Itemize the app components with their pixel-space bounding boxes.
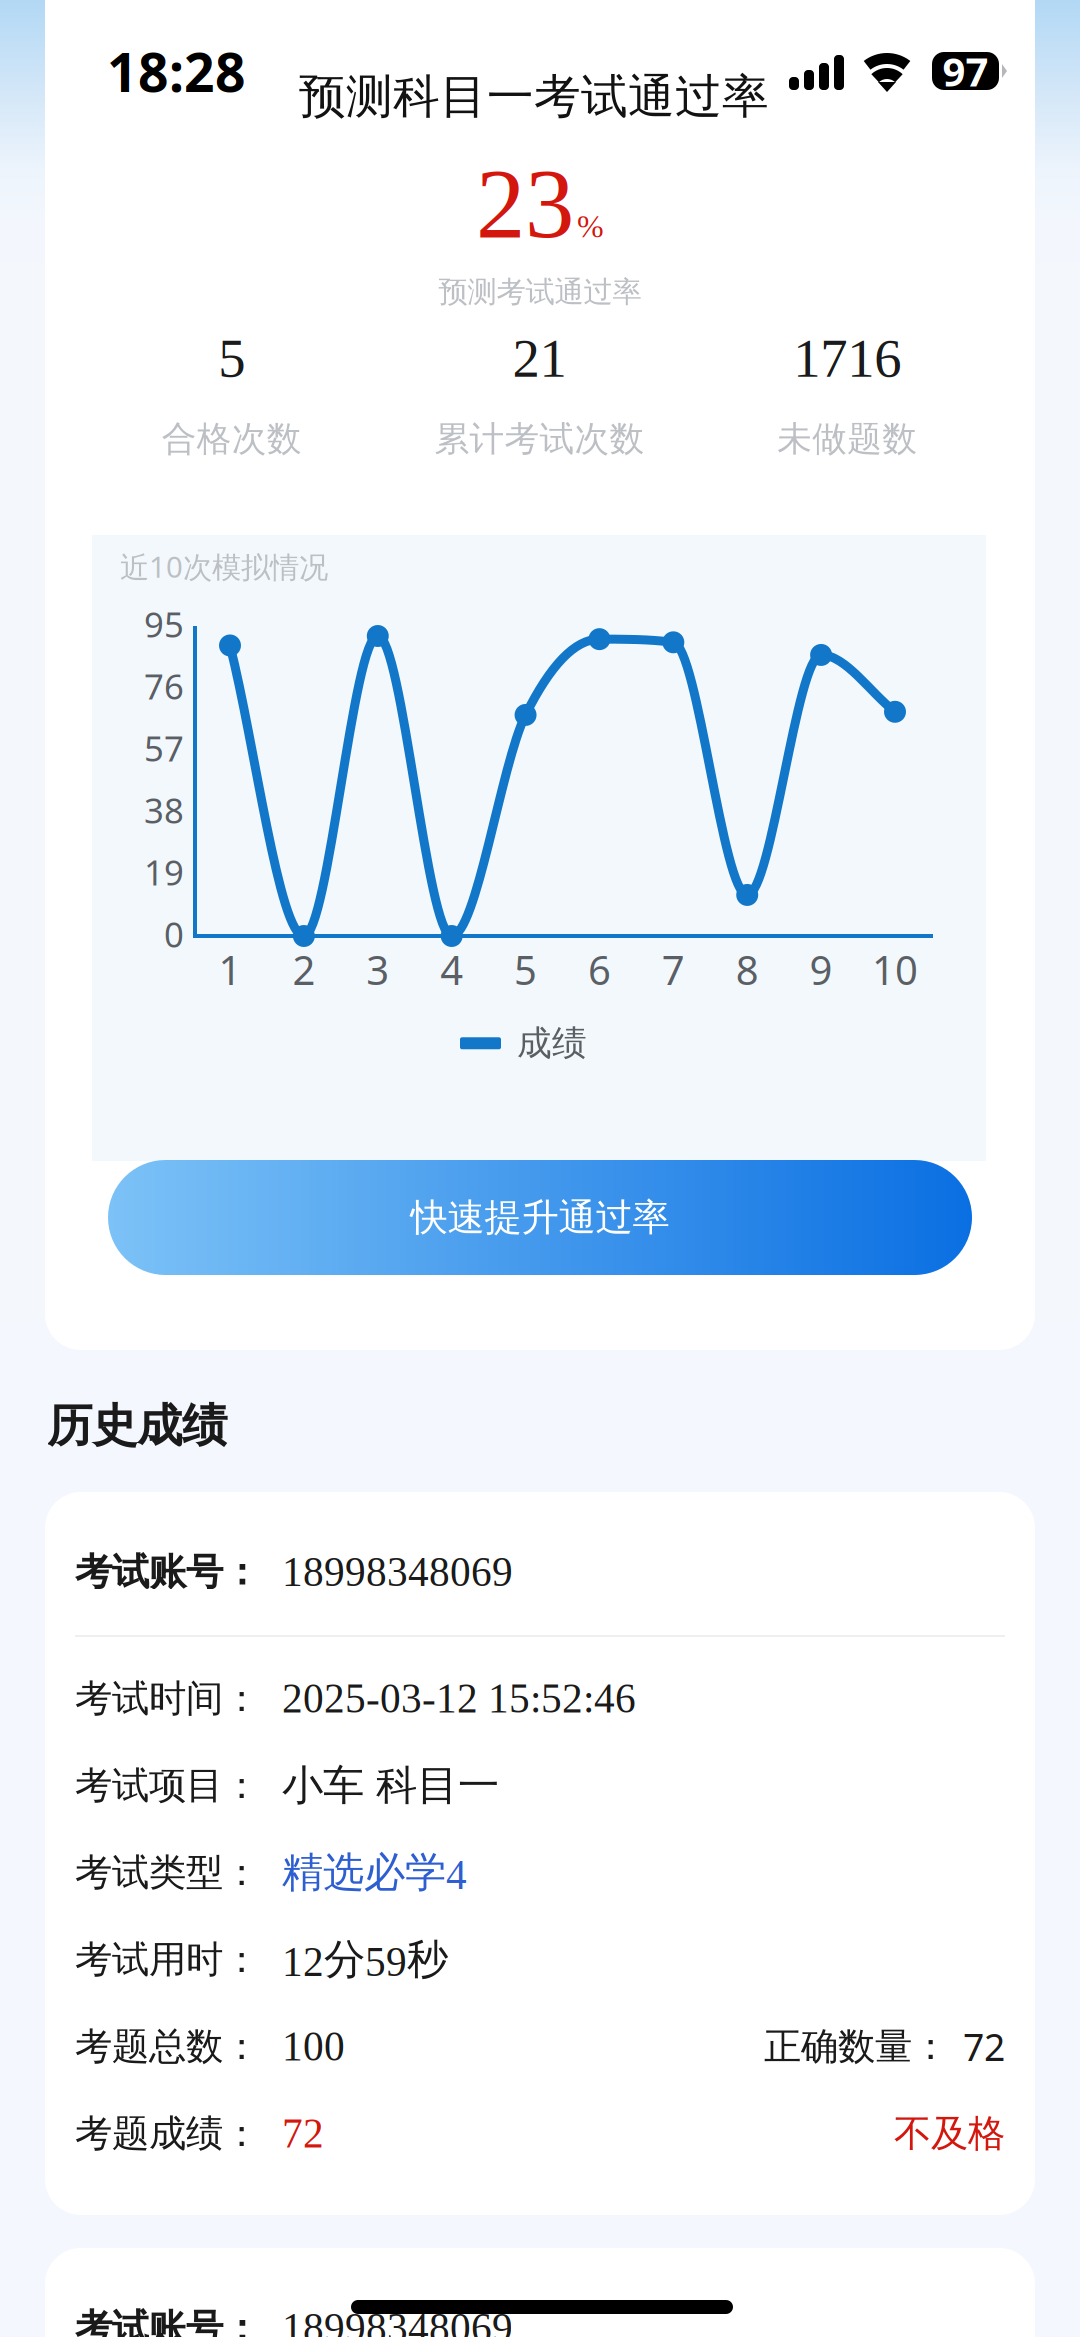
staticText: 正确数量： xyxy=(764,2024,949,2069)
staticText: 累计考试次数 xyxy=(434,417,644,460)
staticText: 3 xyxy=(366,943,389,996)
staticText: 2 xyxy=(292,943,315,996)
staticText: 考试用时： xyxy=(75,1937,260,1982)
staticText: 考试账号： xyxy=(75,1549,260,1595)
staticText: 合格次数 xyxy=(162,417,302,460)
staticText: 历史成绩 xyxy=(47,1398,227,1454)
staticText: % xyxy=(577,209,604,244)
staticText: 23 xyxy=(476,149,574,258)
staticText: 小车 科目一 xyxy=(282,1759,499,1812)
staticText: 5 xyxy=(218,328,245,388)
staticText: 57 xyxy=(144,725,184,771)
staticText: 考试项目： xyxy=(75,1763,260,1808)
staticText: 9 xyxy=(810,943,833,996)
staticText: 19 xyxy=(144,849,184,895)
staticText: 精选必学4 xyxy=(282,1846,467,1899)
staticText: 95 xyxy=(144,601,184,647)
staticText: 72 xyxy=(963,2022,1005,2071)
staticText: 考试时间： xyxy=(75,1676,260,1721)
staticText: 76 xyxy=(144,663,184,709)
staticText: 快速提升通过率 xyxy=(410,1195,669,1240)
staticText: 18:28 xyxy=(107,36,246,107)
staticText: 成绩 xyxy=(517,1022,587,1065)
staticText: 1 xyxy=(218,943,241,996)
staticText: 不及格 xyxy=(894,2111,1005,2156)
staticText: 考题总数： xyxy=(75,2024,260,2069)
staticText: 10 xyxy=(872,943,918,996)
staticText: 4 xyxy=(440,943,463,996)
staticText: 未做题数 xyxy=(777,417,917,460)
button[interactable]: 快速提升通过率 xyxy=(108,1160,972,1275)
staticText: 72 xyxy=(282,2111,324,2156)
staticText: 8 xyxy=(736,943,759,996)
staticText: 2025-03-12 15:52:46 xyxy=(282,1676,636,1721)
staticText: 38 xyxy=(144,787,184,833)
staticText: 0 xyxy=(164,911,184,957)
staticText: 1716 xyxy=(793,328,901,388)
staticText: 18998348069 xyxy=(282,1549,513,1595)
staticText: 考题成绩： xyxy=(75,2111,260,2156)
staticText: 考试账号： xyxy=(75,2305,260,2337)
staticText: 5 xyxy=(514,943,537,996)
staticText: 6 xyxy=(588,943,611,996)
staticText: 97 xyxy=(942,44,988,97)
staticText: 18998348069 xyxy=(282,2305,513,2337)
staticText: 预测考试通过率 xyxy=(438,274,641,310)
staticText: 近10次模拟情况 xyxy=(120,547,328,586)
staticText: 7 xyxy=(662,943,685,996)
staticText: 12分59秒 xyxy=(282,1933,448,1986)
staticText: 考试类型： xyxy=(75,1850,260,1895)
staticText: 21 xyxy=(512,328,566,388)
staticText: 100 xyxy=(282,2024,345,2069)
staticText: 预测科目一考试通过率 xyxy=(299,68,769,125)
